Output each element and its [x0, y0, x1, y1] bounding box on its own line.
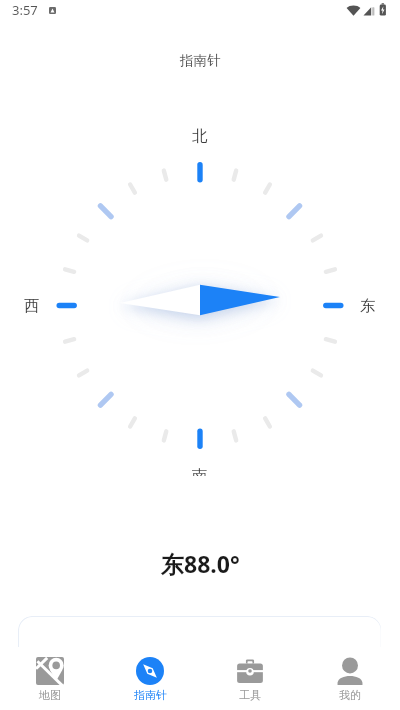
staticText: 工具 — [239, 688, 261, 702]
staticText: 我的 — [339, 688, 361, 702]
staticText: 指南针 — [134, 688, 167, 702]
staticText: 西 — [24, 296, 40, 314]
button[interactable] — [18, 616, 381, 677]
button[interactable]: 我的 — [300, 647, 400, 710]
staticText: 3:57 — [12, 1, 38, 19]
staticText: 东 — [360, 296, 376, 314]
button[interactable]: 指南针 — [100, 647, 200, 710]
button[interactable]: 工具 — [200, 647, 300, 710]
staticText: 地图 — [39, 688, 61, 702]
staticText: 南 — [192, 466, 208, 476]
staticText: 东88.0° — [161, 548, 240, 579]
staticText: 指南针 — [180, 52, 221, 69]
button[interactable]: 地图 — [0, 647, 100, 710]
staticText: 北 — [192, 126, 208, 144]
